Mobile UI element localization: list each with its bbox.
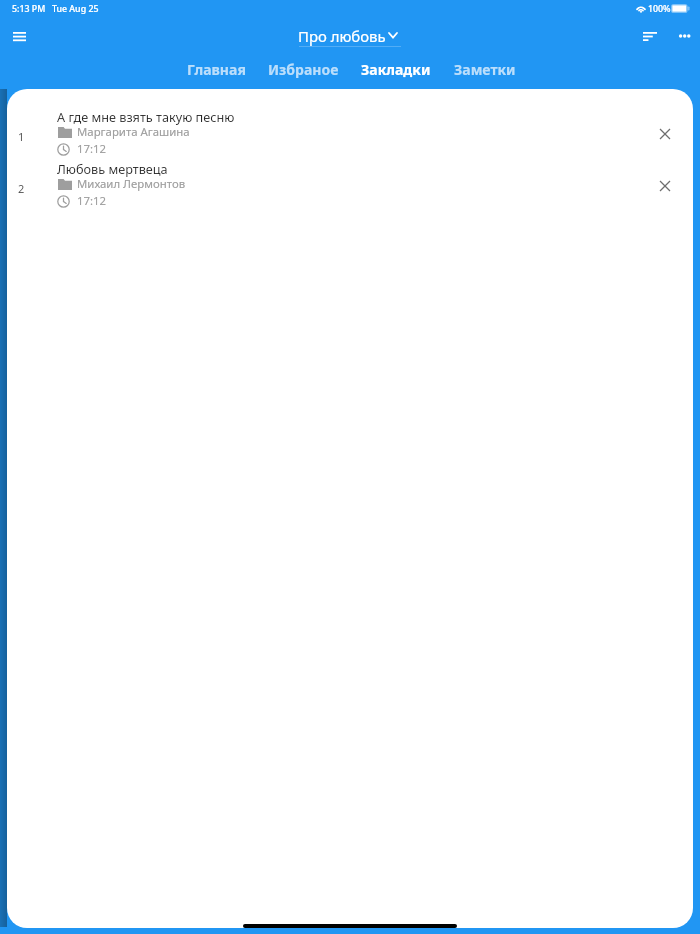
button[interactable]: Remove [645,114,685,154]
button[interactable]: Remove [645,166,685,206]
staticText: Маргарита Агашина [77,124,190,140]
button[interactable]: Menu [1,18,37,54]
staticText: Заметки [454,60,516,79]
button[interactable]: 2 [7,141,693,193]
button[interactable]: 1 [7,89,693,141]
staticText: Михаил Лермонтов [77,176,186,192]
staticText: Избраное [268,60,339,79]
staticText: Любовь мертвеца [57,160,168,177]
staticText: 1 [18,129,25,144]
staticText: 2 [18,181,25,196]
button[interactable]: Главная [187,60,246,79]
staticText: 17:12 [77,141,107,157]
staticText: 5:13 PM [12,3,46,15]
button[interactable]: Закладки [361,60,431,79]
staticText: Закладки [361,60,431,79]
button[interactable]: Заметки [454,60,516,79]
button[interactable]: Sort [632,18,668,54]
button[interactable]: More options [667,18,700,54]
button[interactable]: Избраное [268,60,339,79]
staticText: А где мне взять такую песню [57,108,235,125]
staticText: Главная [187,60,246,79]
staticText: Про любовь [298,26,386,46]
button[interactable]: Про любовь [298,26,398,46]
staticText: 100% [648,3,671,15]
staticText: 17:12 [77,193,107,209]
staticText: Tue Aug 25 [52,3,99,15]
